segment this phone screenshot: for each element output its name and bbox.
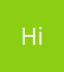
staticText: Hi: [20, 21, 43, 51]
